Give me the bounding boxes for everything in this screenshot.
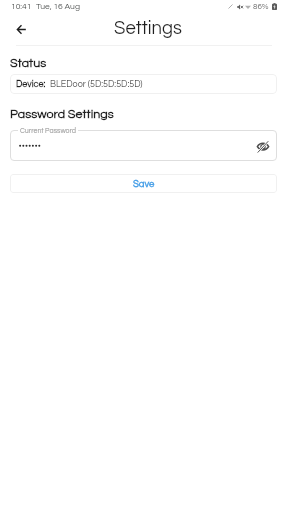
staticText: 10:41 — [11, 2, 32, 11]
button[interactable]: Toggle password visibility — [252, 135, 274, 157]
button[interactable]: Back — [9, 17, 34, 41]
button[interactable]: Save — [10, 174, 277, 193]
staticText: Settings — [114, 19, 182, 38]
button[interactable] — [10, 130, 277, 161]
staticText: 86% — [253, 2, 269, 10]
staticText: Tue, 16 Aug — [36, 2, 80, 11]
button[interactable]: Device: — [10, 74, 277, 94]
staticText: Status — [10, 57, 47, 70]
staticText: Password Settings — [10, 108, 114, 121]
staticText: Device: — [16, 80, 46, 89]
staticText: BLEDoor (5D:5D:5D:5D) — [50, 80, 143, 89]
staticText: Current Password — [20, 127, 76, 134]
staticText: Save — [133, 179, 155, 189]
